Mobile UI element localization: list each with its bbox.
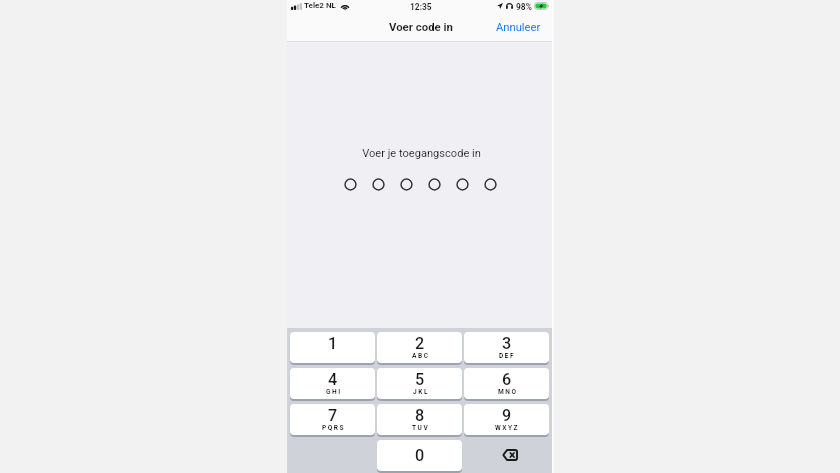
button[interactable]: Backspace [464,440,549,471]
button[interactable]: 5 [377,368,462,399]
staticText: JKL [413,388,429,396]
button[interactable]: 2 [377,332,462,363]
staticText: TUV [412,424,430,432]
staticText: WXYZ [495,424,520,432]
staticText: ABC [412,352,430,360]
staticText: 3 [502,334,512,353]
button[interactable]: 8 [377,404,462,435]
staticText: MNO [498,388,518,396]
button[interactable]: Annuleer [483,18,552,39]
staticText: PQRS [322,424,346,432]
staticText: Voer code in [389,20,453,33]
button[interactable]: 4 [290,368,375,399]
staticText: DEF [499,352,516,360]
button[interactable]: 0 [377,440,462,471]
button[interactable]: 6 [464,368,549,399]
staticText: Tele2 NL [304,1,336,10]
staticText: 9 [502,406,512,425]
staticText: 8 [415,406,425,425]
staticText: Annuleer [496,21,541,34]
button[interactable]: 3 [464,332,549,363]
button[interactable]: 1 [290,332,375,363]
staticText: Voer je toegangscode in [289,147,554,160]
staticText: 12:35 [410,2,432,12]
staticText: 7 [328,406,338,425]
staticText: 0 [415,446,425,465]
button[interactable]: 9 [464,404,549,435]
staticText: 98% [516,2,532,12]
staticText: 6 [502,370,512,389]
staticText: 5 [415,370,425,389]
staticText: 4 [328,370,338,389]
staticText: 1 [328,334,338,353]
button[interactable]: 7 [290,404,375,435]
staticText: 2 [415,334,425,353]
staticText: GHI [326,388,342,396]
